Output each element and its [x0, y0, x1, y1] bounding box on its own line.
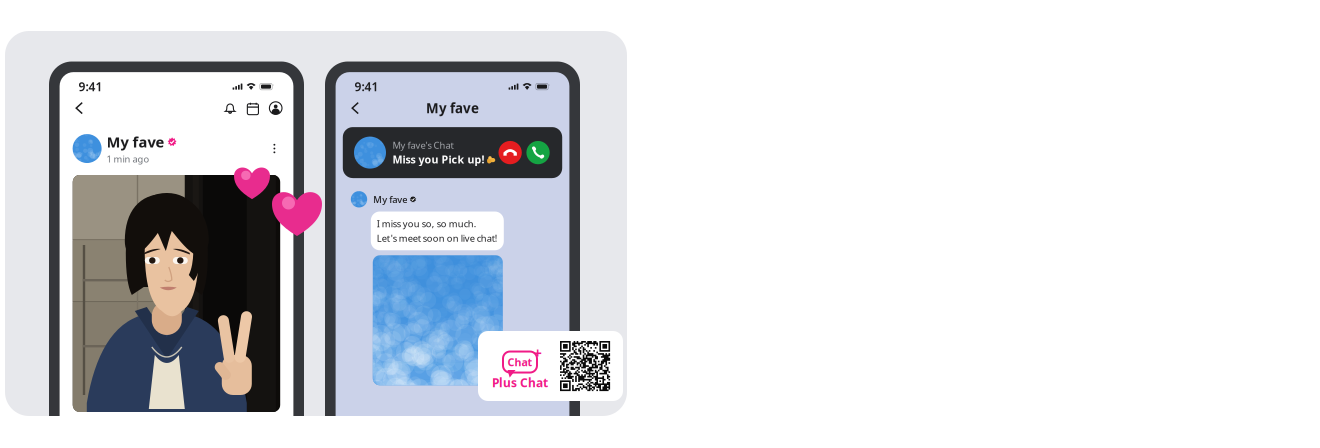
button[interactable]: Profile: [264, 97, 287, 119]
staticText: My fave's Chat: [392, 139, 453, 151]
staticText: 9:41: [355, 79, 379, 94]
staticText: 9:41: [79, 79, 103, 94]
staticText: My fave: [107, 132, 165, 152]
button[interactable]: Back: [70, 97, 90, 119]
staticText: I miss you so, so much.: [377, 217, 477, 230]
staticText: Let's meet soon on live chat!: [377, 232, 498, 244]
button[interactable]: Calendar: [241, 97, 264, 119]
staticText: My fave: [426, 99, 479, 117]
staticText: +: [533, 343, 541, 362]
button[interactable]: Notifications: [219, 97, 241, 119]
staticText: Chat: [507, 355, 532, 369]
button[interactable]: Decline call: [498, 141, 522, 164]
button[interactable]: Accept call: [526, 141, 550, 164]
staticText: 1 min ago: [107, 153, 150, 165]
button[interactable]: Back: [346, 97, 366, 119]
staticText: Miss you Pick up!: [392, 152, 484, 166]
staticText: Plus Chat: [492, 374, 548, 390]
staticText: My fave: [373, 193, 407, 205]
button[interactable]: More options: [265, 138, 283, 158]
